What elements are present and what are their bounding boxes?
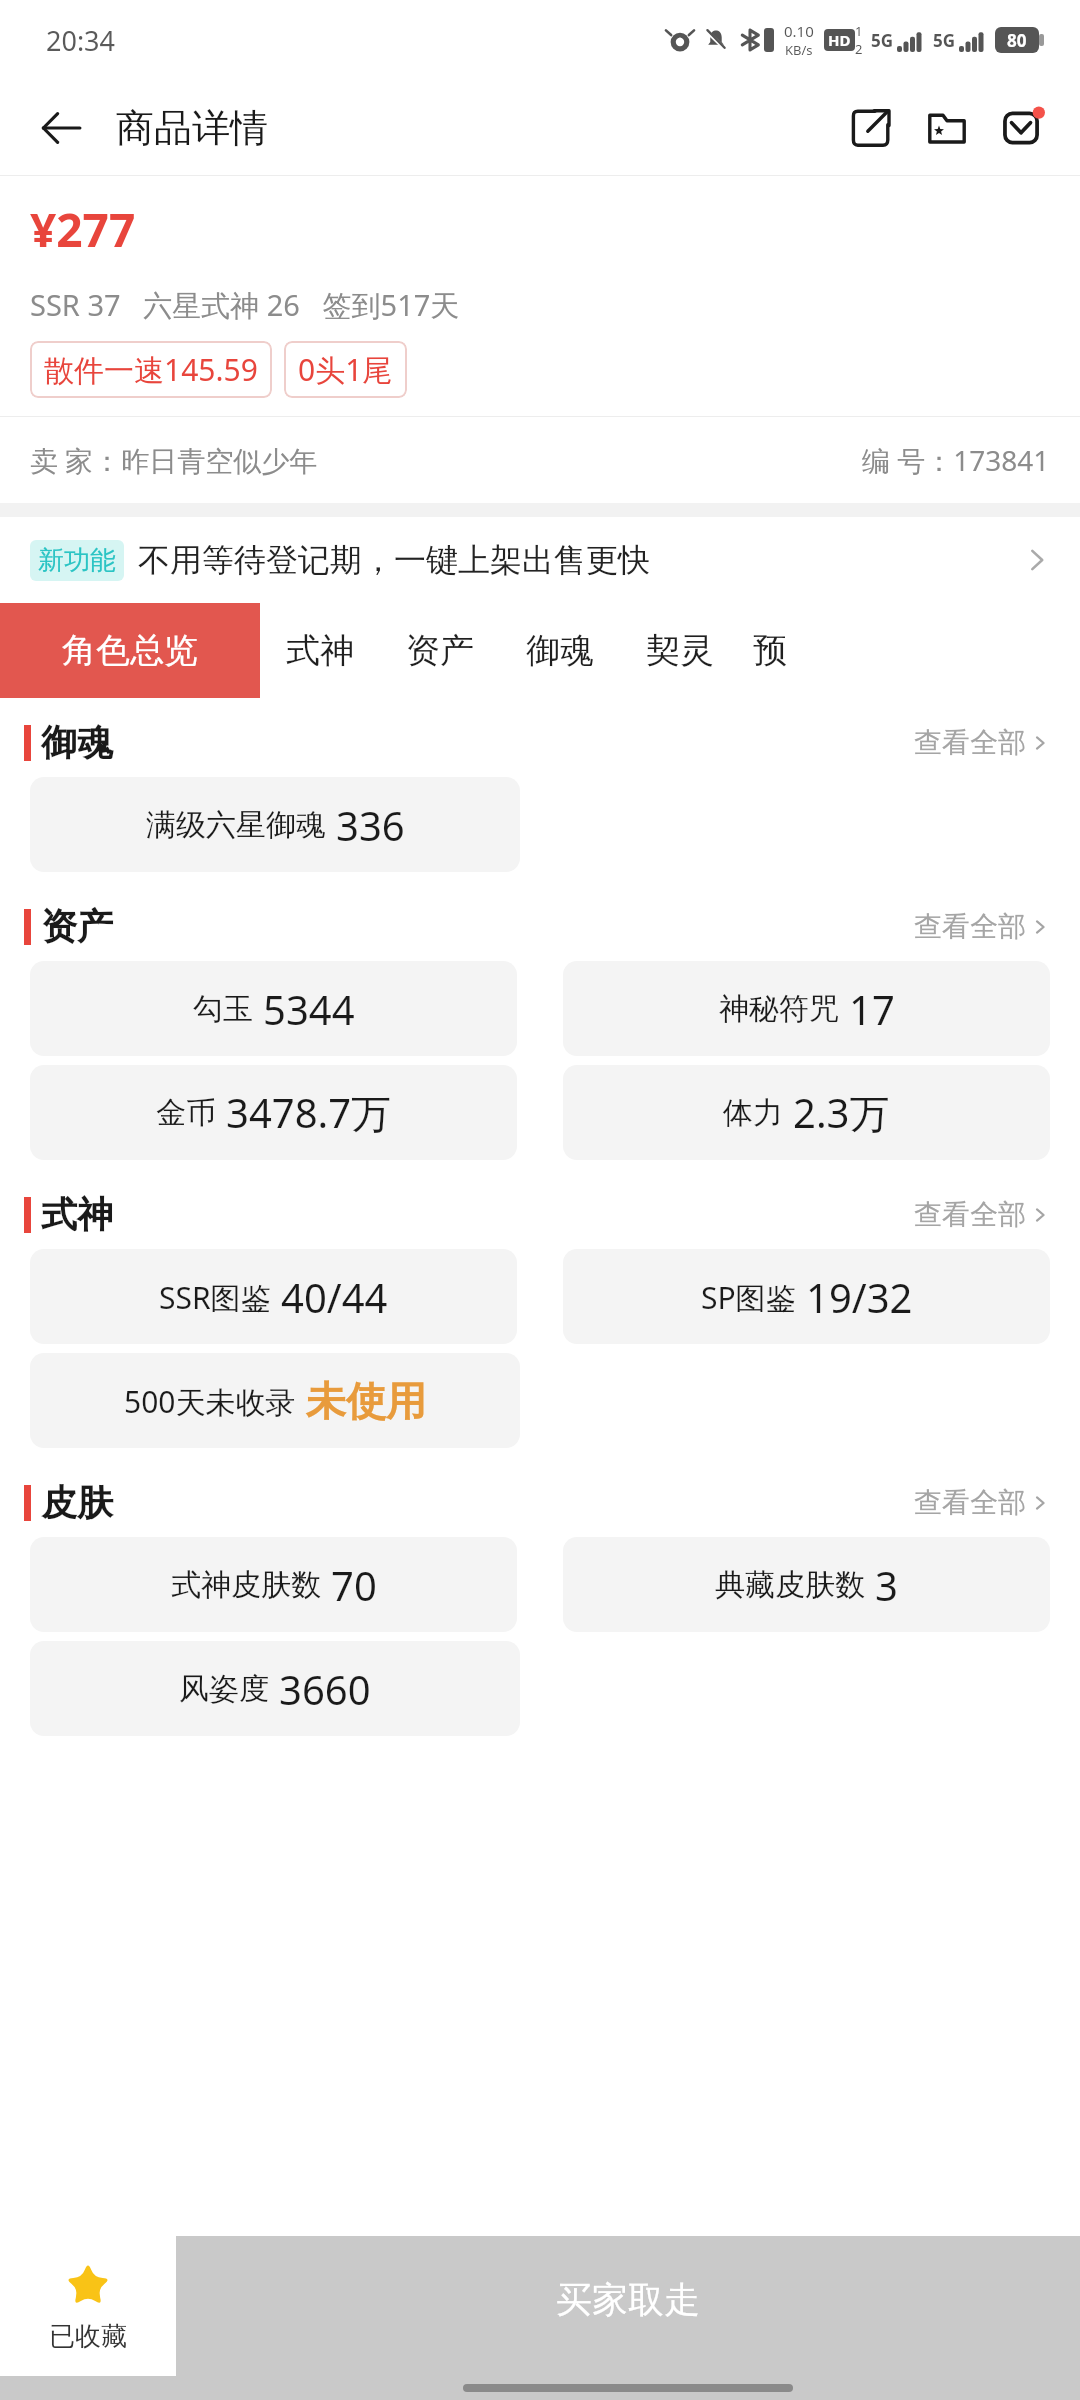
staticText: 式神皮肤数 — [171, 1566, 321, 1604]
staticText: 散件一速145.59 — [44, 349, 258, 390]
staticText: 式神 — [286, 629, 354, 672]
staticText: 已收藏 — [49, 2320, 127, 2353]
staticText: 风姿度 — [179, 1670, 269, 1708]
button[interactable]: 神秘符咒 — [563, 961, 1050, 1056]
button[interactable]: 买家取走 — [176, 2236, 1080, 2376]
button[interactable]: 新功能 — [0, 517, 1080, 603]
staticText: 皮肤 — [41, 1480, 113, 1525]
button[interactable]: 500天未收录 — [30, 1353, 520, 1448]
button[interactable]: 风姿度 — [30, 1641, 520, 1736]
staticText: 3478.7万 — [226, 1085, 392, 1140]
staticText: 查看全部 — [914, 725, 1026, 760]
staticText: 契灵 — [646, 629, 714, 672]
button[interactable]: 散件一速145.59 — [30, 341, 272, 398]
staticText: 典藏皮肤数 — [715, 1566, 865, 1604]
button[interactable]: Share — [838, 95, 904, 161]
button[interactable]: SP图鉴 — [563, 1249, 1050, 1344]
staticText: 3660 — [279, 1662, 371, 1716]
button[interactable]: Messages — [990, 95, 1056, 161]
staticText: 19/32 — [806, 1270, 913, 1324]
staticText: SSR 37 六星式神 26 签到517天 — [30, 285, 460, 325]
button[interactable]: 契灵 — [620, 603, 740, 698]
staticText: 2.3万 — [793, 1085, 890, 1140]
staticText: 336 — [336, 798, 405, 852]
staticText: 查看全部 — [914, 1197, 1026, 1232]
staticText: 御魂 — [526, 629, 594, 672]
staticText: 查看全部 — [914, 1485, 1026, 1520]
button[interactable]: 御魂 — [500, 603, 620, 698]
button[interactable]: Back — [30, 97, 92, 159]
staticText: 卖 家：昨日青空似少年 — [30, 441, 318, 479]
staticText: 体力 — [723, 1094, 783, 1132]
button[interactable]: 查看全部 — [914, 1197, 1050, 1232]
button[interactable]: 勾玉 — [30, 961, 517, 1056]
button[interactable]: 已收藏 — [0, 2236, 176, 2376]
button[interactable]: 查看全部 — [914, 725, 1050, 760]
staticText: 5G — [933, 29, 956, 52]
button[interactable]: Favorites folder — [914, 95, 980, 161]
staticText: 角色总览 — [62, 629, 198, 672]
button[interactable]: 资产 — [380, 603, 500, 698]
staticText: 满级六星御魂 — [146, 806, 326, 844]
staticText: 0.10 — [784, 21, 814, 41]
button[interactable]: 式神皮肤数 — [30, 1537, 517, 1632]
staticText: 金币 — [156, 1094, 216, 1132]
staticText: SP图鉴 — [701, 1277, 796, 1318]
button[interactable]: 0头1尾 — [284, 341, 407, 398]
button[interactable]: 查看全部 — [914, 909, 1050, 944]
staticText: 御魂 — [41, 720, 113, 765]
staticText: 80 — [1007, 29, 1027, 52]
staticText: KB/s — [785, 41, 813, 59]
staticText: SSR图鉴 — [159, 1277, 271, 1318]
staticText: 40/44 — [281, 1270, 388, 1324]
staticText: 3 — [875, 1558, 898, 1612]
staticText: 神秘符咒 — [719, 990, 839, 1028]
staticText: 2 — [855, 40, 863, 58]
staticText: 预 — [753, 629, 787, 672]
button[interactable]: SSR图鉴 — [30, 1249, 517, 1344]
button[interactable]: 预 — [740, 603, 800, 698]
staticText: 17 — [849, 982, 895, 1036]
staticText: 70 — [331, 1558, 377, 1612]
staticText: 5344 — [263, 982, 355, 1036]
button[interactable]: 角色总览 — [0, 603, 260, 698]
button[interactable]: 典藏皮肤数 — [563, 1537, 1050, 1632]
staticText: 0头1尾 — [298, 349, 393, 390]
staticText: 编 号：173841 — [862, 441, 1050, 479]
staticText: 500天未收录 — [124, 1381, 296, 1422]
staticText: 1 — [855, 22, 863, 40]
button[interactable]: 体力 — [563, 1065, 1050, 1160]
staticText: 未使用 — [306, 1376, 426, 1426]
staticText: 勾玉 — [193, 990, 253, 1028]
staticText: 20:34 — [46, 22, 116, 59]
button[interactable]: 查看全部 — [914, 1485, 1050, 1520]
staticText: 查看全部 — [914, 909, 1026, 944]
staticText: ¥277 — [30, 198, 136, 261]
staticText: 新功能 — [38, 544, 116, 577]
staticText: 资产 — [41, 904, 113, 949]
staticText: 买家取走 — [556, 2277, 700, 2322]
button[interactable]: 式神 — [260, 603, 380, 698]
staticText: 5G — [871, 29, 894, 52]
button[interactable]: 金币 — [30, 1065, 517, 1160]
staticText: 不用等待登记期，一键上架出售更快 — [138, 540, 650, 580]
staticText: 商品详情 — [116, 104, 268, 152]
staticText: 资产 — [406, 629, 474, 672]
staticText: 式神 — [41, 1192, 113, 1237]
button[interactable]: 满级六星御魂 — [30, 777, 520, 872]
staticText: HD — [828, 30, 851, 50]
